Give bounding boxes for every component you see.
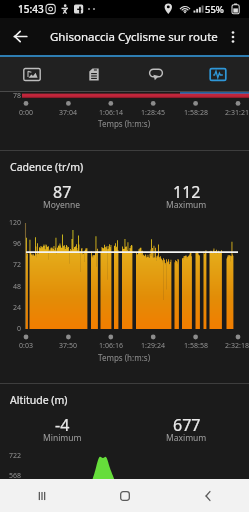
button[interactable]: Laps <box>125 57 187 91</box>
staticText: 1:58:58 <box>184 341 208 351</box>
staticText: 1:06:16 <box>99 341 123 351</box>
staticText: 120 <box>8 218 21 228</box>
staticText: 87 <box>53 181 72 203</box>
button[interactable]: Altitude (m) <box>0 384 249 479</box>
button[interactable]: Back <box>166 479 249 512</box>
button[interactable]: Cadence (tr/m) <box>0 151 249 383</box>
staticText: 96 <box>12 239 21 249</box>
staticText: 0:00 <box>19 108 33 118</box>
button[interactable]: Map <box>0 57 63 91</box>
staticText: 722 <box>8 451 21 461</box>
button[interactable]: More options <box>217 18 249 55</box>
staticText: 24 <box>12 303 21 313</box>
staticText: 78 <box>13 91 22 101</box>
staticText: 15:43 <box>18 2 44 16</box>
button[interactable]: Home <box>83 479 166 512</box>
button[interactable]: Navigate up <box>0 18 40 55</box>
staticText: 677 <box>173 414 201 436</box>
staticText: 1:58:28 <box>184 108 208 118</box>
button[interactable]: Summary <box>63 57 125 91</box>
staticText: 0:03 <box>19 341 33 351</box>
staticText: Ghisonaccia Cyclisme sur route <box>50 29 218 45</box>
button[interactable]: Recents <box>0 479 83 512</box>
staticText: Cadence (tr/m) <box>10 160 84 174</box>
staticText: 2:31:21 <box>225 108 249 118</box>
staticText: 1:29:24 <box>141 341 165 351</box>
staticText: 1:28:45 <box>141 108 165 118</box>
staticText: 0 <box>16 324 21 334</box>
staticText: 55% <box>205 3 224 16</box>
staticText: 48 <box>12 282 21 292</box>
staticText: 2:32:18 <box>225 341 249 351</box>
staticText: -4 <box>55 414 70 436</box>
staticText: Minimum <box>43 432 82 444</box>
staticText: 112 <box>173 181 201 203</box>
staticText: Temps (h:m:s) <box>98 352 151 363</box>
staticText: 37:04 <box>59 108 77 118</box>
staticText: Moyenne <box>43 199 81 211</box>
button[interactable]: Charts <box>187 57 249 91</box>
staticText: Temps (h:m:s) <box>98 118 151 129</box>
staticText: Altitude (m) <box>10 393 68 407</box>
staticText: 1:06:14 <box>99 108 123 118</box>
staticText: 72 <box>12 260 21 270</box>
staticText: 37:50 <box>59 341 77 351</box>
staticText: Maximum <box>166 432 207 444</box>
staticText: 568 <box>8 471 21 481</box>
staticText: Maximum <box>166 199 207 211</box>
